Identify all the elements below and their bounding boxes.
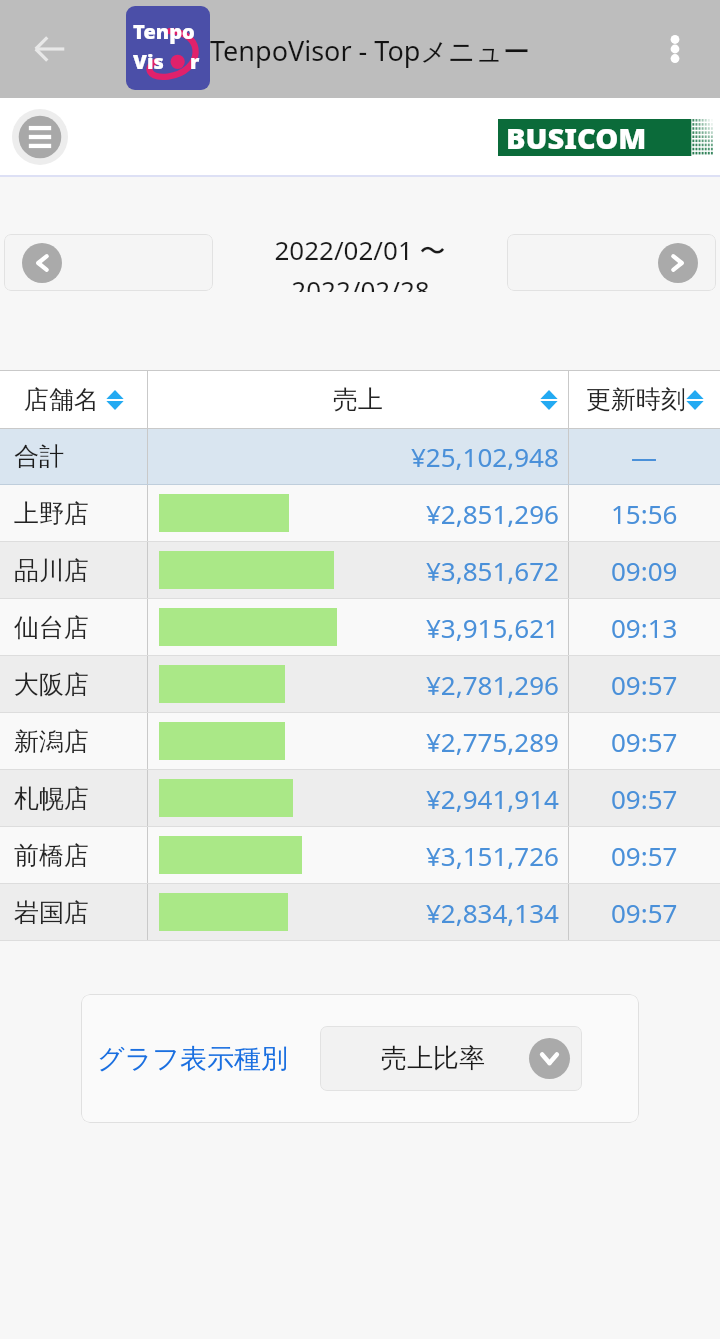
- staticText: ¥25,102,948: [411, 439, 559, 474]
- button[interactable]: 店舗名: [0, 371, 147, 428]
- staticText: 2022/02/28: [291, 272, 430, 292]
- button[interactable]: 更新時刻: [569, 371, 720, 428]
- staticText: 売上比率: [381, 1042, 485, 1075]
- staticText: TenpoVisor - Topメニュー: [210, 32, 531, 69]
- staticText: 札幌店: [14, 783, 89, 814]
- staticText: 店舗名: [24, 384, 99, 415]
- button[interactable]: Menu: [12, 109, 68, 165]
- staticText: 09:13: [611, 610, 678, 645]
- staticText: Vis: [133, 48, 164, 75]
- button[interactable]: Previous period: [4, 234, 213, 291]
- button[interactable]: 仙台店: [0, 599, 720, 655]
- button[interactable]: 売上比率: [320, 1026, 582, 1091]
- button[interactable]: 岩国店: [0, 884, 720, 940]
- staticText: 09:57: [611, 895, 678, 930]
- staticText: 売上: [333, 384, 383, 415]
- staticText: ¥3,151,726: [426, 838, 559, 873]
- button[interactable]: 新潟店: [0, 713, 720, 769]
- staticText: 09:57: [611, 724, 678, 759]
- staticText: 品川店: [14, 555, 89, 586]
- button[interactable]: 前橋店: [0, 827, 720, 883]
- staticText: 09:57: [611, 781, 678, 816]
- staticText: Tenpo: [133, 18, 195, 45]
- staticText: —: [631, 439, 658, 474]
- button[interactable]: Back: [18, 17, 82, 81]
- staticText: 2022/02/01 〜: [274, 232, 446, 268]
- button[interactable]: 合計: [0, 429, 720, 484]
- staticText: 09:09: [611, 553, 678, 588]
- staticText: ¥3,851,672: [426, 553, 559, 588]
- button[interactable]: 札幌店: [0, 770, 720, 826]
- staticText: ¥2,775,289: [426, 724, 559, 759]
- staticText: 09:57: [611, 667, 678, 702]
- staticText: 09:57: [611, 838, 678, 873]
- button[interactable]: More options: [644, 18, 706, 80]
- staticText: 上野店: [14, 498, 89, 529]
- staticText: グラフ表示種別: [97, 1042, 288, 1076]
- button[interactable]: 品川店: [0, 542, 720, 598]
- staticText: 仙台店: [14, 612, 89, 643]
- button[interactable]: 売上: [148, 371, 568, 428]
- staticText: 新潟店: [14, 726, 89, 757]
- staticText: 大阪店: [14, 669, 89, 700]
- staticText: 岩国店: [14, 897, 89, 928]
- staticText: r: [190, 48, 200, 75]
- staticText: 前橋店: [14, 840, 89, 871]
- button[interactable]: Next period: [507, 234, 716, 291]
- staticText: ¥2,781,296: [426, 667, 559, 702]
- staticText: ¥2,834,134: [426, 895, 559, 930]
- staticText: 合計: [14, 441, 64, 472]
- staticText: 15:56: [611, 496, 678, 531]
- staticText: 更新時刻: [586, 384, 686, 415]
- button[interactable]: 大阪店: [0, 656, 720, 712]
- staticText: ¥2,851,296: [426, 496, 559, 531]
- staticText: ¥2,941,914: [426, 781, 559, 816]
- button[interactable]: 上野店: [0, 485, 720, 541]
- staticText: ¥3,915,621: [426, 610, 559, 645]
- staticText: BUSICOM: [506, 118, 647, 155]
